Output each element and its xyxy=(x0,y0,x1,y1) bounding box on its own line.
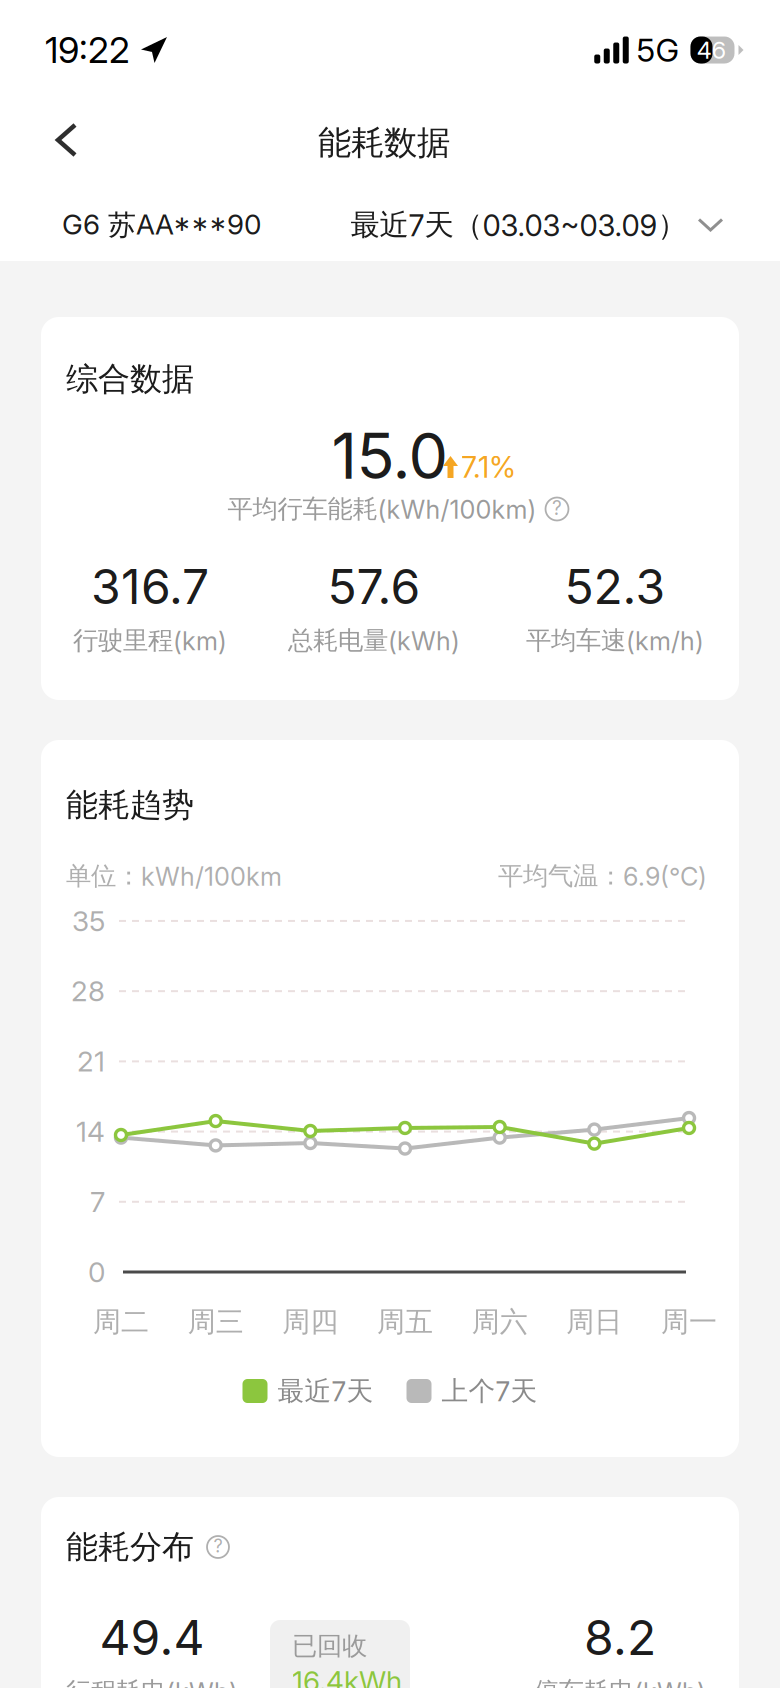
staticText: 7.1% xyxy=(461,449,516,485)
staticText: 周二 xyxy=(93,1304,149,1340)
staticText: ? xyxy=(213,1535,222,1557)
button[interactable]: 返回 xyxy=(30,104,102,176)
staticText: 0 xyxy=(88,1255,105,1289)
staticText: 能耗数据 xyxy=(318,122,450,164)
staticText: 周四 xyxy=(282,1304,338,1340)
staticText: 最近7天 xyxy=(277,1374,373,1408)
staticText: 综合数据 xyxy=(66,359,194,399)
staticText: 能耗分布 xyxy=(66,1527,194,1567)
staticText: 平均行车能耗(kWh/100km) xyxy=(227,493,536,525)
staticText: G6 苏AA***90 xyxy=(62,207,261,243)
staticText: 总耗电量(kWh) xyxy=(288,625,460,656)
staticText: 周五 xyxy=(377,1304,433,1340)
staticText: 14 xyxy=(76,1115,105,1148)
staticText: 停车耗电(kWh) xyxy=(534,1676,706,1688)
staticText: 已回收 xyxy=(292,1630,367,1662)
staticText: ? xyxy=(552,496,562,519)
button[interactable]: 最近7天（03.03~03.09） xyxy=(350,201,723,249)
staticText: 周三 xyxy=(188,1304,244,1340)
staticText: 35 xyxy=(72,904,105,938)
staticText: 46 xyxy=(696,35,726,64)
staticText: 52.3 xyxy=(564,557,665,616)
staticText: 8.2 xyxy=(584,1608,656,1667)
staticText: 行程耗电(kWh) xyxy=(66,1676,238,1688)
staticText: 16.4kWh xyxy=(292,1664,402,1688)
staticText: 57.6 xyxy=(327,557,420,616)
staticText: 7 xyxy=(90,1185,105,1219)
staticText: 行驶里程(km) xyxy=(73,625,227,656)
staticText: 最近7天（03.03~03.09） xyxy=(350,206,686,243)
staticText: 平均气温：6.9(°C) xyxy=(498,860,707,892)
staticText: 28 xyxy=(71,974,105,1008)
staticText: 316.7 xyxy=(91,557,209,616)
staticText: 周一 xyxy=(661,1304,717,1340)
staticText: 上个7天 xyxy=(441,1374,537,1408)
staticText: 周六 xyxy=(472,1304,528,1340)
staticText: 周日 xyxy=(566,1304,622,1340)
staticText: 19:22 xyxy=(45,28,130,72)
staticText: 平均车速(km/h) xyxy=(526,625,704,656)
staticText: 49.4 xyxy=(99,1608,204,1667)
staticText: 5G xyxy=(636,31,679,69)
staticText: 单位：kWh/100km xyxy=(66,860,282,892)
staticText: 21 xyxy=(77,1044,105,1078)
staticText: 能耗趋势 xyxy=(66,785,194,825)
staticText: 15.0 xyxy=(331,418,448,494)
